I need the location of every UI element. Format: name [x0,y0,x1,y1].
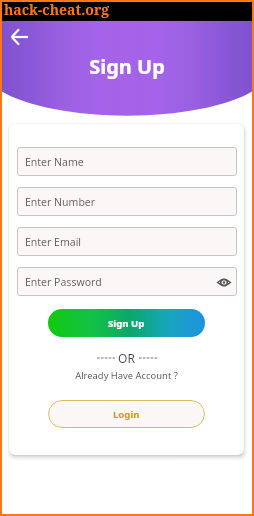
staticText: OR [115,350,139,366]
button[interactable]: Show password [216,274,232,290]
button[interactable]: Sign Up [48,309,205,337]
button[interactable]: Enter Number [17,187,237,216]
button[interactable]: Back [5,22,33,50]
staticText: Enter Email [25,235,82,249]
staticText: Already Have Account ? [9,369,244,382]
staticText: Sign Up [108,317,145,330]
button[interactable]: Enter Email [17,227,237,256]
staticText: Enter Number [25,195,96,209]
button[interactable]: Login [48,400,205,428]
staticText: hack-cheat.org [4,0,110,19]
button[interactable]: Enter Name [17,147,237,176]
button[interactable]: Enter Password [17,267,237,296]
staticText: Enter Name [25,155,84,169]
staticText: Login [113,408,140,421]
staticText: Enter Password [25,275,102,289]
staticText: Sign Up [0,53,254,80]
